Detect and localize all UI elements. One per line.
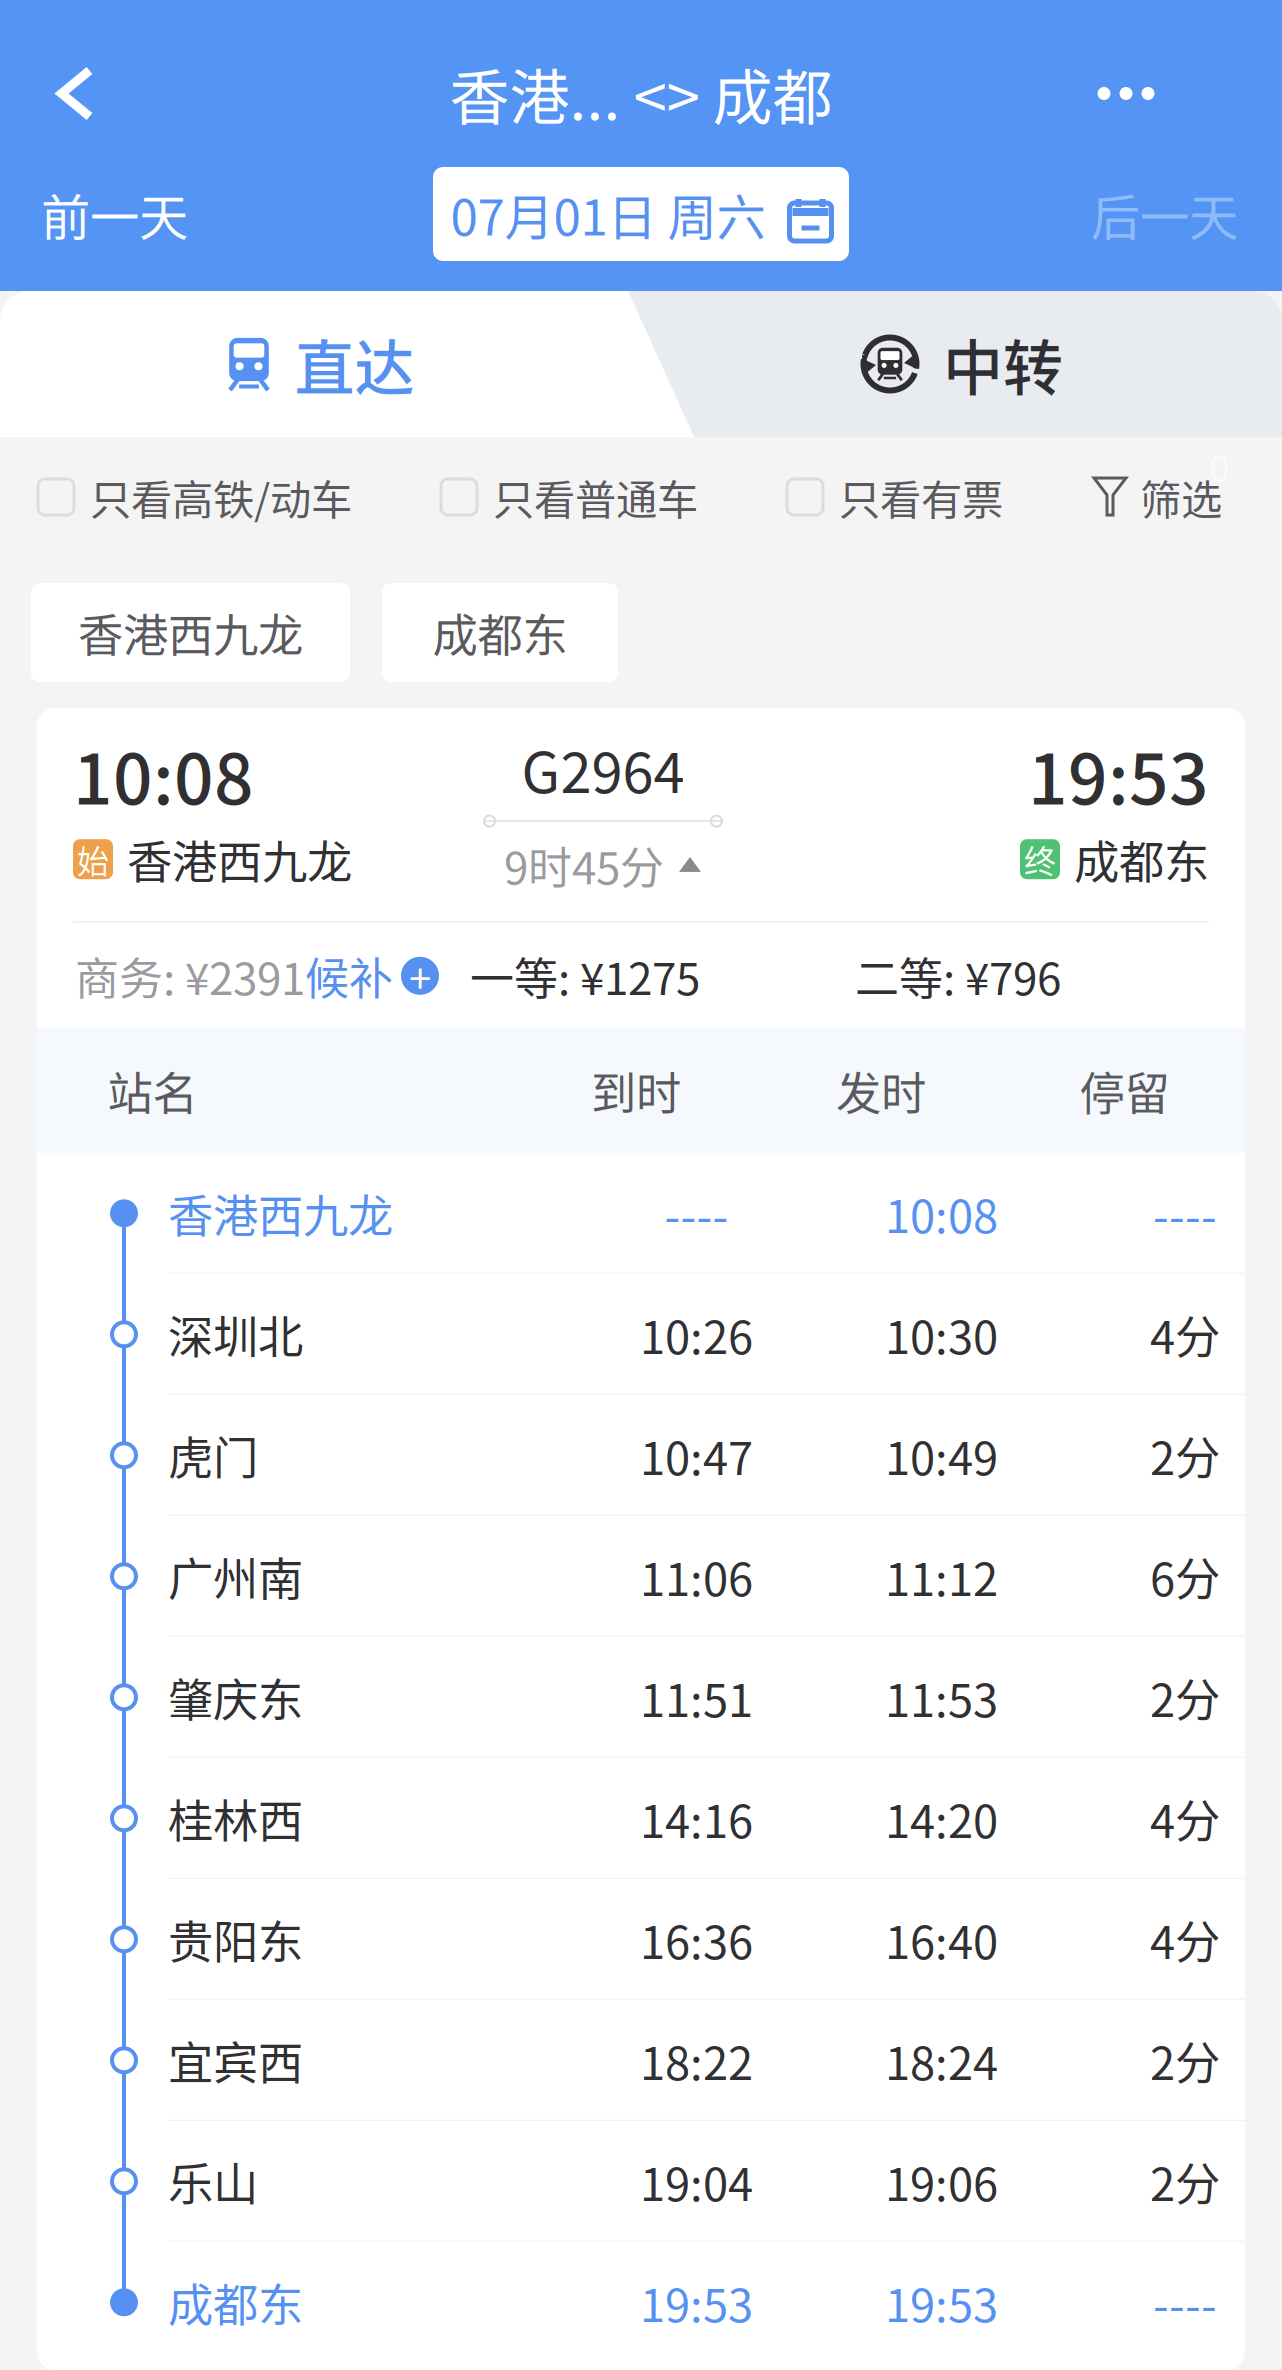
staticText: 虎门 [168,1422,258,1488]
staticText: 18:22 [640,2027,753,2093]
staticText: 只看有票 [839,467,1003,527]
staticText: 香港西九龙 [78,600,303,665]
staticText: 直达 [294,321,414,407]
staticText: 二等: ¥796 [855,944,1061,1008]
staticText: 10:08 [885,1180,998,1246]
staticText: 一等: ¥1275 [470,944,700,1008]
button[interactable]: 07月01日 周六 [433,167,849,261]
staticText: 10:26 [640,1301,753,1367]
button[interactable]: 直达 [0,291,640,437]
staticText: 候补 [305,944,393,1008]
staticText: 14:16 [640,1785,753,1851]
button[interactable]: 只看普通车 [441,452,698,542]
staticText: 4分 [1150,1906,1220,1972]
staticText: 6分 [1150,1543,1220,1609]
staticText: 筛选 [1140,467,1222,527]
staticText: 贵阳东 [168,1906,303,1972]
staticText: 肇庆东 [168,1664,303,1730]
staticText: G2964 [521,728,684,809]
staticText: 2分 [1150,1422,1220,1488]
staticText: 10:49 [885,1422,998,1488]
staticText: + [409,947,431,1005]
staticText: 4分 [1150,1301,1220,1367]
button[interactable]: 后一天 [952,159,1282,269]
staticText: 只看普通车 [493,467,698,527]
staticText: 19:53 [640,2269,753,2335]
staticText: 11:12 [885,1543,998,1609]
button[interactable]: More options [970,23,1282,163]
button[interactable]: 10:08 [37,708,1245,1029]
button[interactable]: 只看高铁/动车 [0,452,352,542]
button[interactable]: 前一天 [0,159,330,269]
staticText: 只看高铁/动车 [90,467,352,527]
button[interactable]: 筛选 [1092,452,1282,542]
button[interactable]: 中转 [640,291,1282,437]
staticText: 香港西九龙 [168,1180,393,1246]
staticText: 0 [1209,439,1230,493]
staticText: 16:40 [885,1906,998,1972]
staticText: 香港西九龙 [127,826,352,892]
staticText: ---- [1153,2269,1217,2335]
staticText: 站名 [107,1058,197,1124]
staticText: 香港... <> 成都 [449,50,832,137]
button[interactable]: 只看有票 [787,452,1003,542]
staticText: 11:51 [640,1664,753,1730]
staticText: 桂林西 [168,1785,303,1851]
staticText: 前一天 [41,178,188,250]
staticText: 中转 [943,321,1063,407]
staticText: 11:53 [885,1664,998,1730]
staticText: 成都东 [432,600,567,665]
staticText: ---- [1153,1180,1217,1246]
staticText: 乐山 [168,2148,258,2214]
staticText: 成都东 [1074,826,1209,892]
button[interactable]: Back [0,23,151,163]
staticText: 宜宾西 [168,2027,303,2093]
staticText: 广州南 [168,1543,303,1609]
button[interactable]: 香港西九龙 [31,583,350,682]
staticText: 后一天 [1091,178,1238,250]
staticText: 19:53 [885,2269,998,2335]
staticText: 14:20 [885,1785,998,1851]
staticText: 2分 [1150,2027,1220,2093]
staticText: 深圳北 [168,1301,303,1367]
staticText: 18:24 [885,2027,998,2093]
staticText: 19:06 [885,2148,998,2214]
staticText: 16:36 [640,1906,753,1972]
staticText: 07月01日 周六 [450,178,765,250]
staticText: 停留 [1079,1058,1169,1124]
staticText: 始 [77,836,109,882]
staticText: 11:06 [640,1543,753,1609]
staticText: 19:04 [640,2148,753,2214]
staticText: 成都东 [168,2269,303,2335]
staticText: 9时45分 [504,833,664,897]
staticText: 10:08 [73,724,254,824]
button[interactable]: 成都东 [382,583,618,682]
staticText: 到时 [591,1058,681,1124]
staticText: ---- [664,1180,728,1246]
staticText: 4分 [1150,1785,1220,1851]
staticText: 发时 [836,1058,926,1124]
staticText: 终 [1024,836,1056,882]
staticText: 19:53 [1028,724,1209,824]
staticText: 商务: ¥2391 [75,944,305,1008]
staticText: 10:30 [885,1301,998,1367]
staticText: 10:47 [640,1422,753,1488]
staticText: 2分 [1150,1664,1220,1730]
staticText: 2分 [1150,2148,1220,2214]
